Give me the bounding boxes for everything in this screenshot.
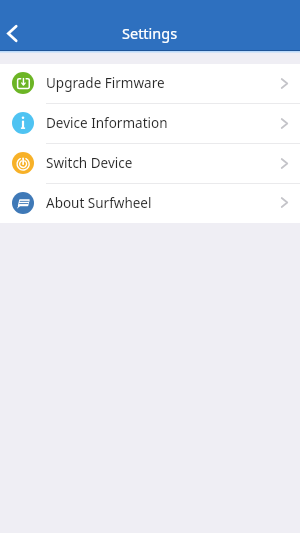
staticText: About Surfwheel xyxy=(46,194,152,212)
button[interactable]: Switch Device xyxy=(0,144,300,184)
button[interactable]: Upgrade Firmware xyxy=(0,64,300,104)
button[interactable]: Device Information xyxy=(0,104,300,144)
staticText: Switch Device xyxy=(46,154,133,172)
button[interactable]: About Surfwheel xyxy=(0,184,300,223)
staticText: Settings xyxy=(122,23,178,43)
button[interactable]: Back xyxy=(0,16,32,50)
staticText: Device Information xyxy=(46,114,168,132)
staticText: Upgrade Firmware xyxy=(46,74,165,92)
